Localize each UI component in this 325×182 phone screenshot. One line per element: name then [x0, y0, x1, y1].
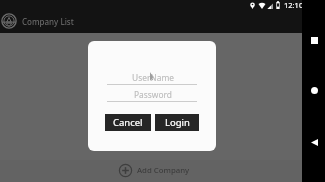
- button[interactable]: Home: [307, 83, 322, 98]
- staticText: 12:10: [284, 0, 304, 10]
- staticText: Add Company: [137, 165, 190, 176]
- staticText: Password: [134, 89, 172, 100]
- button[interactable]: Recents: [307, 33, 321, 47]
- button[interactable]: Cancel: [105, 114, 151, 131]
- button[interactable]: Add Company: [0, 160, 302, 182]
- staticText: Company List: [22, 16, 74, 27]
- button[interactable]: Back: [307, 135, 322, 150]
- staticText: UserName: [132, 72, 175, 83]
- button[interactable]: Login: [155, 114, 199, 131]
- staticText: Cancel: [113, 116, 143, 129]
- staticText: Login: [165, 116, 190, 129]
